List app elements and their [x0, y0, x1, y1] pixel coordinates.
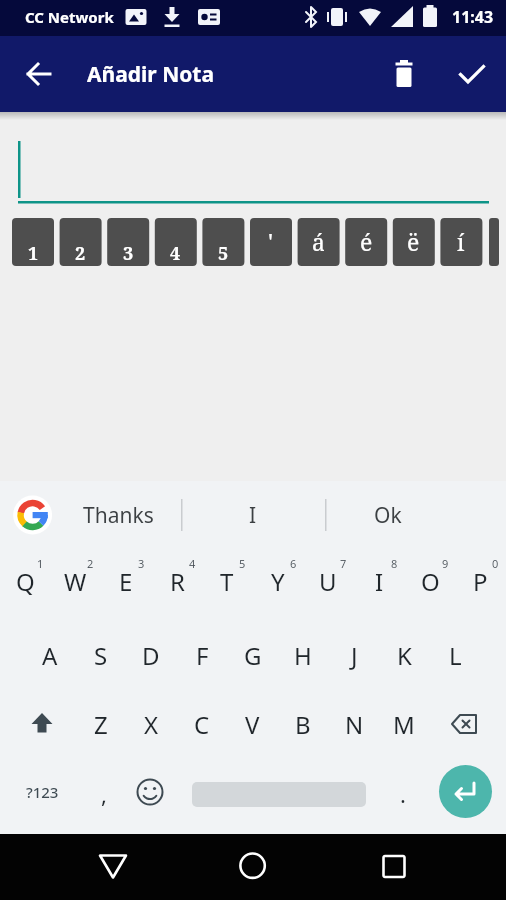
staticText: 4	[170, 241, 181, 266]
button[interactable]: í	[440, 217, 482, 265]
staticText: 3	[123, 241, 134, 266]
button[interactable]: ,	[84, 770, 124, 818]
staticText: é	[360, 226, 373, 257]
staticText: 2	[75, 241, 86, 266]
button[interactable]: Y	[254, 557, 302, 605]
staticText: V	[245, 708, 260, 741]
staticText: K	[397, 639, 412, 672]
button[interactable]: Ok	[318, 488, 458, 542]
staticText: H	[294, 639, 312, 672]
button[interactable]	[370, 842, 418, 890]
staticText: ,	[101, 779, 107, 809]
button[interactable]: Thanks	[55, 488, 181, 542]
staticText: P	[473, 565, 488, 598]
button[interactable]: S	[77, 631, 125, 679]
button[interactable]: Q	[1, 557, 49, 605]
staticText: A	[42, 639, 58, 672]
staticText: S	[94, 639, 108, 672]
button[interactable]: P	[456, 557, 504, 605]
button[interactable]: Z	[77, 700, 125, 748]
button[interactable]: V	[228, 700, 276, 748]
staticText: ë	[407, 226, 420, 257]
staticText: Q	[16, 565, 35, 598]
button[interactable]: O	[406, 557, 454, 605]
staticText: '	[268, 226, 274, 257]
staticText: B	[295, 708, 311, 741]
staticText: J	[351, 639, 358, 672]
button[interactable]	[18, 52, 62, 96]
button[interactable]	[10, 493, 55, 538]
staticText: 11:43	[452, 6, 494, 28]
staticText: Añadir Nota	[87, 60, 215, 89]
button[interactable]: E	[102, 557, 150, 605]
button[interactable]: 1	[12, 229, 54, 277]
button[interactable]: 4	[154, 229, 196, 277]
staticText: 4	[189, 556, 196, 571]
staticText: á	[312, 226, 325, 257]
button[interactable]: X	[127, 700, 175, 748]
button[interactable]: A	[26, 631, 74, 679]
button[interactable]: L	[431, 631, 479, 679]
button[interactable]: I	[355, 557, 403, 605]
staticText: 6	[290, 556, 297, 571]
button[interactable]: G	[229, 631, 277, 679]
staticText: N	[345, 708, 364, 741]
button[interactable]: D	[127, 631, 175, 679]
staticText: Thanks	[83, 501, 154, 530]
button[interactable]: á	[297, 217, 339, 265]
staticText: M	[393, 708, 415, 741]
button[interactable]: .	[383, 770, 423, 818]
button[interactable]	[192, 778, 366, 810]
button[interactable]: T	[203, 557, 251, 605]
button[interactable]: U	[304, 557, 352, 605]
button[interactable]: ë	[392, 217, 434, 265]
staticText: O	[421, 565, 440, 598]
button[interactable]: W	[51, 557, 99, 605]
staticText: F	[196, 639, 209, 672]
staticText: L	[449, 639, 462, 672]
button[interactable]: I	[183, 488, 323, 542]
staticText: 8	[391, 556, 398, 571]
staticText: I	[249, 501, 257, 530]
button[interactable]: 2	[59, 229, 101, 277]
button[interactable]: B	[279, 700, 327, 748]
button[interactable]: 5	[202, 229, 244, 277]
button[interactable]: K	[380, 631, 428, 679]
staticText: .	[400, 779, 406, 809]
button[interactable]	[440, 700, 488, 748]
staticText: 5	[218, 241, 229, 266]
button[interactable]	[439, 765, 492, 818]
button[interactable]: J	[330, 631, 378, 679]
staticText: 3	[138, 556, 145, 571]
staticText: Y	[271, 565, 285, 598]
staticText: 9	[442, 556, 449, 571]
staticText: X	[144, 708, 159, 741]
staticText: W	[64, 565, 87, 598]
staticText: G	[244, 639, 262, 672]
button[interactable]	[382, 52, 426, 96]
staticText: 5	[239, 556, 246, 571]
staticText: ?123	[26, 782, 59, 802]
button[interactable]: 3	[107, 229, 149, 277]
button[interactable]	[89, 842, 137, 890]
button[interactable]: é	[345, 217, 387, 265]
staticText: CC Network	[25, 7, 114, 27]
button[interactable]: F	[178, 631, 226, 679]
staticText: R	[170, 565, 185, 598]
staticText: 0	[492, 556, 499, 571]
staticText: Z	[94, 708, 108, 741]
staticText: C	[194, 708, 210, 741]
button[interactable]	[229, 842, 277, 890]
button[interactable]	[126, 768, 174, 816]
button[interactable]: C	[178, 700, 226, 748]
staticText: U	[319, 565, 337, 598]
button[interactable]: R	[153, 557, 201, 605]
button[interactable]	[450, 52, 494, 96]
button[interactable]: '	[250, 217, 292, 265]
button[interactable]: H	[279, 631, 327, 679]
button[interactable]: ?123	[10, 768, 74, 816]
button[interactable]	[18, 700, 66, 748]
staticText: 2	[87, 556, 94, 571]
button[interactable]: M	[380, 700, 428, 748]
button[interactable]: N	[330, 700, 378, 748]
